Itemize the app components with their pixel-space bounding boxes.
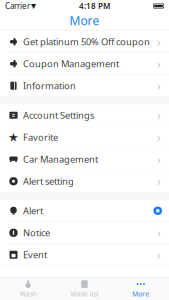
button[interactable]: Information [0,75,169,96]
staticText: Get platinum 50% Off coupon [23,36,150,48]
staticText: › [157,151,161,167]
button[interactable]: Event [0,244,169,265]
staticText: 4:18 PM [79,1,110,11]
button[interactable]: ★ [0,126,169,148]
staticText: › [157,173,161,189]
button[interactable]: Wash [0,278,56,300]
button[interactable]: Notice [0,222,169,243]
staticText: Car Management [23,153,98,165]
staticText: Favorite [23,131,58,143]
staticText: More [132,290,149,298]
staticText: Information [23,80,76,92]
staticText: › [157,107,161,123]
staticText: › [157,225,161,241]
staticText: › [157,129,161,145]
staticText: Carrier [5,1,30,11]
staticText: ★ [8,130,19,144]
button[interactable]: Account Settings [0,104,169,126]
staticText: More [69,12,99,28]
button[interactable]: Coupon Management [0,53,169,74]
staticText: Notice [23,227,50,239]
staticText: › [157,247,161,263]
button[interactable]: Wash list [56,278,113,300]
staticText: › [157,34,161,50]
button[interactable]: Alert setting [0,170,169,192]
staticText: Wash [20,290,37,298]
staticText: Alert setting [23,175,74,187]
button[interactable]: More [113,278,169,300]
staticText: Coupon Management [23,58,119,70]
button[interactable]: Alert [0,200,169,221]
staticText: Event [23,249,47,261]
button[interactable]: Get platinum 50% Off coupon [0,31,169,52]
staticText: › [157,78,161,94]
button[interactable]: Car Management [0,148,169,170]
staticText: Alert [23,205,43,217]
staticText: Account Settings [23,109,94,121]
staticText: › [157,56,161,72]
staticText: Wash list [70,290,98,298]
staticText: ▼ [31,2,36,10]
